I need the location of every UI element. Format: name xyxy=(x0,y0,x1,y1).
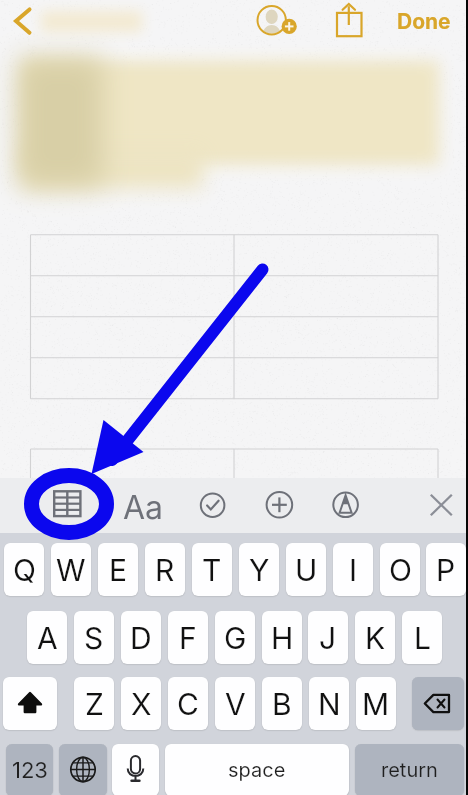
staticText: E xyxy=(109,552,128,588)
staticText: F xyxy=(179,620,197,656)
staticText: H xyxy=(271,620,294,656)
staticText: X xyxy=(131,686,152,722)
button[interactable]: T xyxy=(192,543,232,596)
staticText: Y xyxy=(249,552,270,588)
button[interactable]: Done xyxy=(391,5,457,38)
button[interactable]: G xyxy=(215,611,255,664)
staticText: return xyxy=(381,758,438,782)
button[interactable]: W xyxy=(51,543,91,596)
staticText: S xyxy=(84,620,104,656)
button[interactable]: H xyxy=(262,611,302,664)
staticText: Z xyxy=(85,686,104,722)
staticText: J xyxy=(319,620,337,656)
staticText: K xyxy=(365,620,386,656)
button[interactable]: return xyxy=(355,744,464,795)
staticText: Aa xyxy=(123,488,164,522)
staticText: N xyxy=(318,686,341,722)
staticText: M xyxy=(362,686,390,722)
button[interactable]: Share xyxy=(331,0,369,38)
button[interactable]: M xyxy=(356,677,396,730)
button[interactable]: O xyxy=(380,543,420,596)
staticText: I xyxy=(349,552,358,588)
staticText: W xyxy=(56,552,86,588)
button[interactable]: Numbers xyxy=(6,744,53,795)
staticText: P xyxy=(436,552,456,588)
button[interactable]: D xyxy=(121,611,161,664)
button[interactable]: Close keyboard xyxy=(419,483,463,527)
button[interactable]: Back xyxy=(6,3,42,39)
button[interactable]: N xyxy=(309,677,349,730)
button[interactable]: Checklist xyxy=(190,482,236,528)
button[interactable]: Aa xyxy=(123,488,167,522)
button[interactable]: V xyxy=(215,677,255,730)
staticText: 123 xyxy=(12,757,48,784)
button[interactable]: F xyxy=(168,611,208,664)
staticText: G xyxy=(224,620,247,656)
button[interactable]: I xyxy=(333,543,373,596)
button[interactable]: Add attachment xyxy=(257,482,303,528)
staticText: C xyxy=(177,686,199,722)
button[interactable]: P xyxy=(426,543,466,596)
button[interactable]: Change keyboard xyxy=(59,744,107,795)
button[interactable]: K xyxy=(355,611,395,664)
button[interactable]: X xyxy=(121,677,161,730)
button[interactable]: Table xyxy=(44,482,90,528)
button[interactable]: Markup xyxy=(323,482,369,528)
button[interactable]: E xyxy=(98,543,138,596)
staticText: A xyxy=(37,620,58,656)
staticText: U xyxy=(295,552,318,588)
staticText: O xyxy=(389,552,412,588)
staticText: D xyxy=(130,620,152,656)
button[interactable]: space xyxy=(165,744,349,795)
button[interactable]: Add people xyxy=(252,0,298,42)
button[interactable]: Y xyxy=(239,543,279,596)
staticText: Done xyxy=(397,9,451,34)
staticText: T xyxy=(202,552,222,588)
button[interactable]: R xyxy=(145,543,185,596)
button[interactable]: C xyxy=(168,677,208,730)
button[interactable]: Dictate xyxy=(112,744,159,795)
staticText: R xyxy=(155,552,175,588)
button[interactable]: U xyxy=(286,543,326,596)
staticText: V xyxy=(225,686,246,722)
button[interactable]: A xyxy=(27,611,67,664)
button[interactable]: Z xyxy=(74,677,114,730)
staticText: L xyxy=(414,620,431,656)
staticText: B xyxy=(272,686,292,722)
button[interactable]: Shift xyxy=(3,677,57,730)
button[interactable]: Backspace xyxy=(412,677,464,730)
button[interactable]: L xyxy=(402,611,442,664)
staticText: Q xyxy=(13,552,36,588)
button[interactable]: J xyxy=(308,611,348,664)
staticText: space xyxy=(228,758,286,782)
button[interactable]: Q xyxy=(4,543,44,596)
button[interactable]: B xyxy=(262,677,302,730)
button[interactable]: S xyxy=(74,611,114,664)
